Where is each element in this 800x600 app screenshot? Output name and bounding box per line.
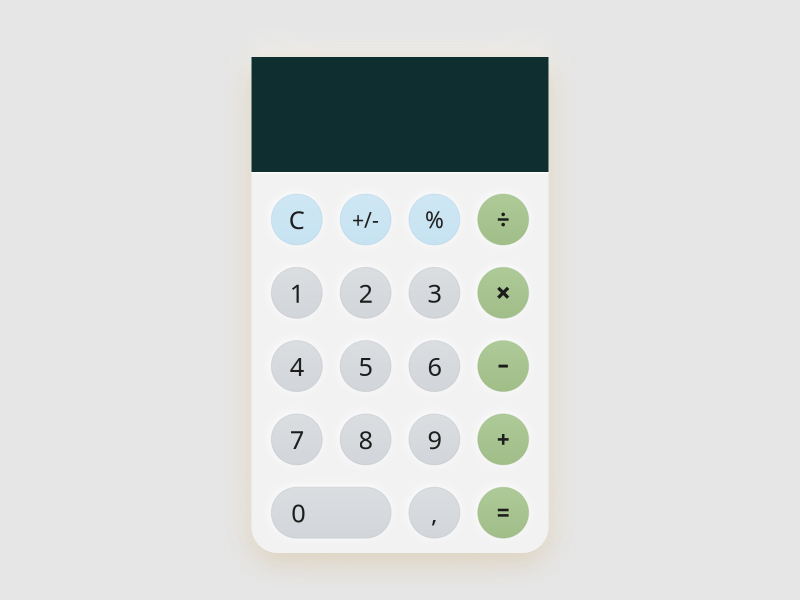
staticText: 5: [359, 349, 373, 383]
staticText: 7: [290, 423, 304, 456]
staticText: 3: [427, 276, 441, 310]
button[interactable]: 5: [340, 341, 391, 392]
staticText: +/-: [352, 205, 379, 234]
button[interactable]: Add: [478, 414, 529, 465]
staticText: ,: [431, 496, 438, 529]
staticText: 4: [290, 349, 304, 383]
button[interactable]: Subtract: [478, 341, 529, 392]
button[interactable]: Multiply: [478, 267, 529, 318]
button[interactable]: 8: [340, 414, 391, 465]
staticText: 6: [427, 349, 441, 383]
staticText: 9: [427, 423, 441, 456]
button[interactable]: 2: [340, 267, 391, 318]
staticText: C: [289, 203, 305, 236]
button[interactable]: %: [409, 194, 460, 245]
button[interactable]: 3: [409, 267, 460, 318]
button[interactable]: C: [271, 194, 322, 245]
button[interactable]: ,: [409, 487, 460, 538]
button[interactable]: 1: [271, 267, 322, 318]
staticText: 8: [359, 423, 373, 456]
staticText: %: [425, 204, 444, 234]
button[interactable]: +/-: [340, 194, 391, 245]
button[interactable]: Divide: [478, 194, 529, 245]
button[interactable]: Equals: [478, 487, 529, 538]
button[interactable]: 4: [271, 341, 322, 392]
staticText: 0: [291, 496, 305, 529]
button[interactable]: 7: [271, 414, 322, 465]
button[interactable]: 9: [409, 414, 460, 465]
button[interactable]: 6: [409, 341, 460, 392]
staticText: 1: [290, 276, 304, 310]
staticText: 2: [359, 276, 373, 310]
button[interactable]: 0: [271, 487, 391, 538]
